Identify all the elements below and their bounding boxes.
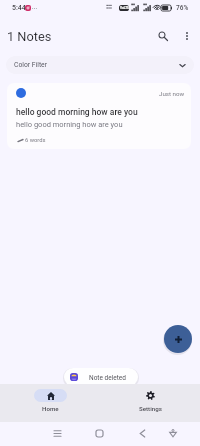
staticText: hello good morning how are you (16, 107, 188, 117)
staticText: Note deleted (89, 374, 126, 382)
button[interactable]: Color Filter (6, 56, 194, 74)
button[interactable]: Just now (7, 83, 191, 149)
button[interactable]: Search (152, 25, 173, 46)
button[interactable]: Home (0, 384, 100, 422)
button[interactable]: Hide keyboard (163, 423, 183, 443)
staticText: hello good morning how are you (16, 120, 188, 129)
staticText: 6 words (25, 137, 46, 144)
button[interactable]: Recent apps (47, 423, 67, 443)
staticText: 5:44 (12, 4, 26, 12)
staticText: VoLTE (120, 6, 129, 10)
staticText: Color Filter (14, 61, 48, 69)
staticText: 1 Notes (7, 29, 52, 44)
button[interactable]: Add note (164, 325, 192, 353)
button[interactable]: Settings (100, 384, 200, 422)
button[interactable]: Back (132, 423, 152, 443)
button[interactable]: More options (176, 25, 197, 46)
button[interactable]: Home (89, 423, 109, 443)
staticText: Just now (159, 90, 185, 97)
staticText: Home (42, 405, 59, 412)
staticText: Settings (139, 405, 162, 412)
staticText: 76% (176, 4, 189, 12)
